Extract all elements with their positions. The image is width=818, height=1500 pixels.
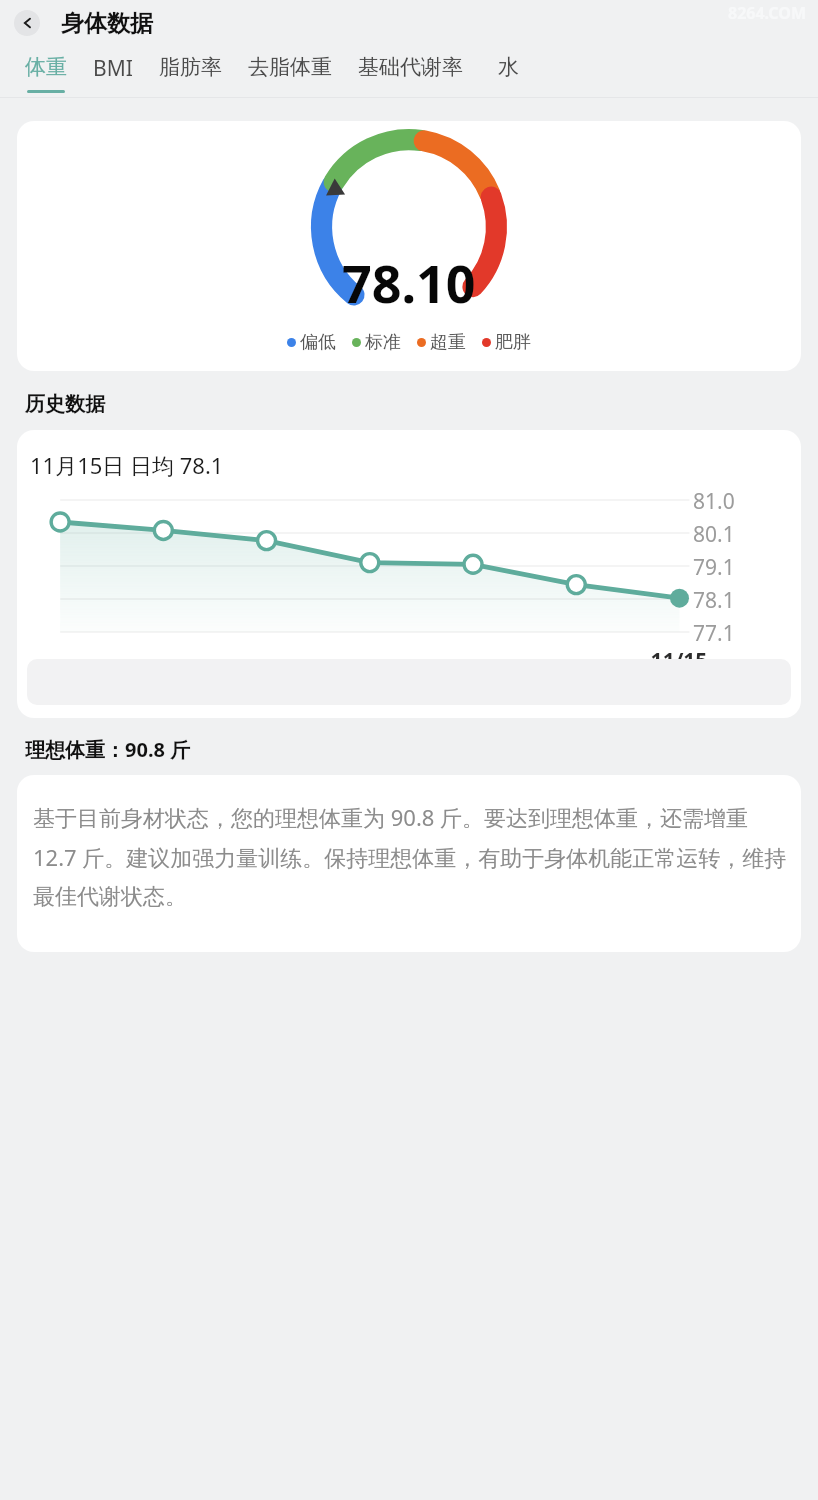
staticText: 11/15 xyxy=(642,646,716,675)
staticText: 11月15日 日均 78.1 xyxy=(30,450,224,480)
staticText: 身体数据 xyxy=(61,9,153,38)
button[interactable]: 基础代谢率 xyxy=(358,46,463,93)
staticText: 79.1 xyxy=(693,553,735,582)
button[interactable]: 水 xyxy=(489,46,527,93)
staticText: 理想体重：90.8 斤 xyxy=(25,736,191,763)
staticText: 77.1 xyxy=(693,619,735,648)
staticText: 历史数据 xyxy=(25,392,105,417)
staticText: 水 xyxy=(498,54,519,80)
staticText: BMI xyxy=(93,54,133,83)
staticText: 基础代谢率 xyxy=(358,54,463,80)
staticText: 11/9 xyxy=(25,658,95,685)
staticText: 去脂体重 xyxy=(248,54,332,80)
button[interactable]: BMI xyxy=(93,46,133,96)
staticText: 78.10 xyxy=(342,247,476,318)
staticText: 脂肪率 xyxy=(159,54,222,80)
staticText: 肥胖 xyxy=(495,331,531,354)
staticText: 偏低 xyxy=(300,331,336,354)
button[interactable]: 78.10 xyxy=(17,121,801,371)
button[interactable]: 脂肪率 xyxy=(159,46,222,93)
staticText: 体重 xyxy=(25,54,67,80)
button[interactable]: Back xyxy=(14,10,40,36)
staticText: 81.0 xyxy=(693,487,735,516)
button[interactable]: 去脂体重 xyxy=(248,46,332,93)
staticText: 基于目前身材状态，您的理想体重为 90.8 斤。要达到理想体重，还需增重 12.… xyxy=(33,802,788,911)
button[interactable]: 11月15日 日均 78.1 xyxy=(17,430,801,718)
button[interactable]: 基于目前身材状态，您的理想体重为 90.8 斤。要达到理想体重，还需增重 12.… xyxy=(17,775,801,952)
staticText: 超重 xyxy=(430,331,466,354)
staticText: 80.1 xyxy=(693,520,735,549)
staticText: 标准 xyxy=(365,331,401,354)
staticText: 78.1 xyxy=(693,586,735,615)
button[interactable]: 体重 xyxy=(25,46,67,93)
